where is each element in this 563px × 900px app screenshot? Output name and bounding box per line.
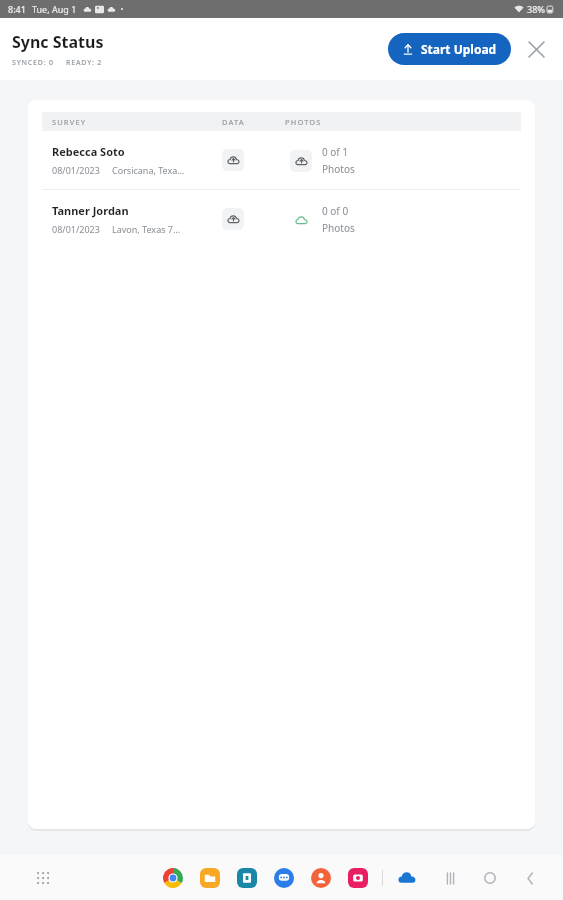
button[interactable]: Contacts <box>308 865 334 891</box>
button[interactable]: Recents <box>437 865 463 891</box>
button[interactable]: All apps <box>30 865 56 891</box>
staticText: Start Upload <box>421 41 497 57</box>
staticText: Corsicana, Texa… <box>112 164 185 176</box>
button[interactable]: Upload data <box>222 149 244 171</box>
button[interactable]: OneDrive <box>394 865 420 891</box>
staticText: Photos <box>322 221 355 235</box>
staticText: READY: 2 <box>66 58 103 68</box>
button[interactable]: Rebecca Soto <box>28 131 535 189</box>
staticText: Photos <box>322 162 355 176</box>
staticText: Tanner Jordan <box>52 203 129 218</box>
staticText: Lavon, Texas 7… <box>112 223 181 235</box>
staticText: DATA <box>222 117 245 127</box>
button[interactable]: Files <box>197 865 223 891</box>
button[interactable]: Messages <box>271 865 297 891</box>
button[interactable]: Start Upload <box>388 33 511 65</box>
button[interactable]: Upload photos <box>290 150 312 172</box>
staticText: Sync Status <box>12 31 104 53</box>
button[interactable]: Home <box>477 865 503 891</box>
staticText: 0 of 1 <box>322 145 349 159</box>
staticText: 8:41 <box>8 3 26 15</box>
staticText: PHOTOS <box>285 117 322 127</box>
button[interactable]: Calendar <box>234 865 260 891</box>
staticText: Tue, Aug 1 <box>32 3 77 15</box>
button[interactable]: Upload photos <box>290 209 312 231</box>
button[interactable]: Close <box>519 32 553 66</box>
staticText: Rebecca Soto <box>52 144 125 159</box>
button[interactable]: Gallery <box>345 865 371 891</box>
staticText: 0 of 0 <box>322 204 349 218</box>
button[interactable]: Back <box>517 865 543 891</box>
staticText: 38% <box>527 3 545 15</box>
button[interactable]: Upload data <box>222 208 244 230</box>
button[interactable]: Tanner Jordan <box>28 190 535 248</box>
staticText: SURVEY <box>52 117 87 127</box>
staticText: SYNCED: 0 <box>12 58 54 68</box>
button[interactable]: Chrome <box>160 865 186 891</box>
staticText: 08/01/2023 <box>52 164 100 176</box>
staticText: 08/01/2023 <box>52 223 100 235</box>
